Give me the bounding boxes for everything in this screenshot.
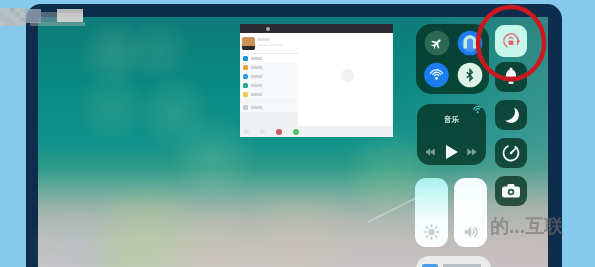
button[interactable] [240, 24, 393, 137]
button[interactable]: Volume [454, 178, 487, 247]
button[interactable]: Brightness [415, 178, 448, 247]
button[interactable]: Connectivity [416, 24, 489, 94]
button[interactable] [416, 256, 491, 267]
staticText: 的...互联 [490, 213, 564, 239]
button[interactable]: Rotation Lock [495, 25, 527, 57]
button[interactable]: Timer [495, 138, 527, 168]
button[interactable]: Silent Mode [495, 62, 527, 92]
button[interactable]: Camera [495, 176, 527, 206]
button[interactable]: 音乐 [417, 104, 486, 165]
staticText: 音乐 [444, 115, 459, 124]
button[interactable]: Do Not Disturb [495, 100, 527, 130]
